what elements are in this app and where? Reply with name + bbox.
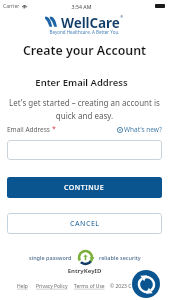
staticText: CONTINUE (64, 183, 105, 193)
staticText: © 2023 C (110, 283, 132, 290)
button[interactable]: Terms of Use (74, 283, 105, 290)
staticText: WellCare (61, 14, 120, 32)
staticText: What's new? (124, 125, 162, 134)
staticText: * (52, 124, 56, 134)
staticText: Carrier (3, 3, 20, 10)
staticText: 3:54 AM (0, 3, 166, 10)
staticText: CANCEL (70, 219, 100, 229)
button[interactable]: Help (17, 283, 28, 290)
button[interactable]: Refresh (132, 270, 160, 298)
button[interactable]: Privacy Policy (36, 283, 68, 290)
button[interactable] (7, 140, 162, 160)
staticText: single password (29, 254, 72, 261)
staticText: EntryKeyID (0, 267, 169, 275)
staticText: Email Address (7, 125, 50, 134)
staticText: ® (120, 14, 124, 19)
staticText: Let's get started – creating an account … (0, 97, 169, 121)
button[interactable]: What's new? (117, 125, 162, 134)
staticText: reliable security (99, 254, 141, 261)
button[interactable]: CONTINUE (7, 177, 162, 198)
button[interactable]: CANCEL (7, 213, 162, 234)
staticText: Create your Account (0, 42, 169, 59)
staticText: Beyond Healthcare. A Better You. (0, 29, 169, 35)
staticText: Enter Email Address (0, 76, 166, 89)
